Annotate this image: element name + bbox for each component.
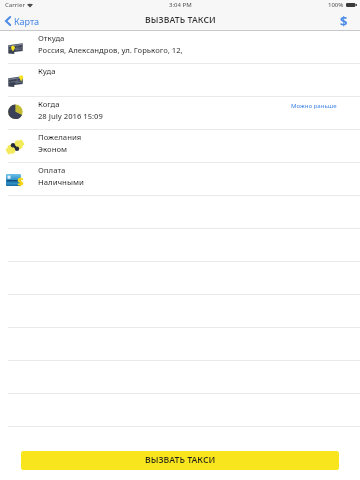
button[interactable]: Карта xyxy=(0,11,46,29)
staticText: 28 July 2016 15:09 xyxy=(38,111,103,121)
staticText: Наличными xyxy=(38,177,84,187)
staticText: Когда xyxy=(38,99,60,109)
staticText: ВЫЗВАТЬ ТАКСИ xyxy=(145,14,216,26)
staticText: Оплата xyxy=(38,165,66,175)
button[interactable]: Оплата xyxy=(0,163,360,196)
staticText: Эконом xyxy=(38,144,68,154)
staticText: Откуда xyxy=(38,33,65,43)
staticText: Carrier xyxy=(5,1,25,9)
staticText: ВЫЗВАТЬ ТАКСИ xyxy=(145,454,216,466)
staticText: Пожелания xyxy=(38,132,82,142)
staticText: 100% xyxy=(328,1,344,9)
button[interactable]: ВЫЗВАТЬ ТАКСИ xyxy=(21,451,339,470)
staticText: Россия, Александров, ул. Горького, 12, xyxy=(38,45,183,55)
button[interactable]: Откуда xyxy=(0,31,360,64)
button[interactable]: Когда xyxy=(0,97,360,130)
staticText: Можно раньше xyxy=(291,101,337,109)
staticText: Карта xyxy=(14,15,40,27)
staticText: $ xyxy=(340,12,348,28)
button[interactable]: Оплата xyxy=(330,10,360,30)
staticText: 3:04 PM xyxy=(169,1,192,9)
button[interactable]: Пожелания xyxy=(0,130,360,163)
button[interactable]: Куда xyxy=(0,64,360,97)
staticText: Куда xyxy=(38,66,56,76)
